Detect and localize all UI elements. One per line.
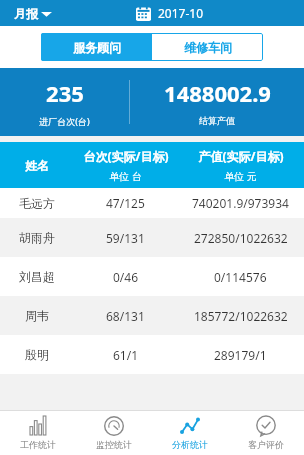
- staticText: 产值(实际/目标): [198, 148, 284, 164]
- staticText: 客户评价: [248, 439, 284, 450]
- staticText: 0/114576: [214, 269, 267, 285]
- staticText: 272850/1022632: [194, 230, 288, 246]
- button[interactable]: 毛远方: [0, 188, 304, 218]
- staticText: 姓名: [25, 158, 49, 173]
- staticText: 单位 台: [109, 169, 142, 183]
- staticText: 59/131: [106, 230, 145, 246]
- button[interactable]: 刘昌超: [0, 257, 304, 296]
- button[interactable]: 服务顾问: [41, 33, 152, 61]
- staticText: 胡雨舟: [19, 230, 55, 245]
- button[interactable]: 胡雨舟: [0, 218, 304, 257]
- staticText: 单位 元: [224, 169, 257, 183]
- other: Pick month: [136, 6, 151, 21]
- button[interactable]: 客户评价: [228, 411, 304, 455]
- staticText: 维修车间: [184, 40, 232, 55]
- staticText: 工作统计: [20, 439, 56, 450]
- staticText: 61/1: [113, 347, 139, 363]
- button[interactable]: 分析统计: [152, 411, 228, 455]
- staticText: 0/46: [113, 269, 139, 285]
- staticText: 服务顾问: [73, 40, 121, 55]
- staticText: 185772/1022632: [194, 308, 288, 324]
- staticText: 台次(实际/目标): [83, 148, 169, 164]
- staticText: 289179/1: [214, 347, 267, 363]
- staticText: 监控统计: [96, 439, 132, 450]
- staticText: 740201.9/973934: [192, 195, 289, 211]
- staticText: 68/131: [106, 308, 145, 324]
- staticText: 47/125: [106, 195, 145, 211]
- button[interactable]: 1488002.9: [130, 68, 304, 136]
- button[interactable]: 维修车间: [152, 33, 263, 61]
- staticText: 毛远方: [19, 196, 55, 211]
- button[interactable]: Pick month: [136, 5, 204, 21]
- button[interactable]: 殷明: [0, 335, 304, 374]
- staticText: 2017-10: [158, 5, 204, 21]
- button[interactable]: 工作统计: [0, 411, 76, 455]
- staticText: 结算产值: [199, 115, 235, 126]
- staticText: 殷明: [25, 347, 49, 362]
- staticText: 月报: [14, 6, 38, 21]
- staticText: 235: [46, 78, 84, 108]
- button[interactable]: 235: [0, 68, 129, 136]
- button[interactable]: 周韦: [0, 296, 304, 335]
- staticText: 周韦: [25, 308, 49, 323]
- staticText: 进厂台次(台): [39, 115, 90, 127]
- staticText: 刘昌超: [19, 269, 55, 284]
- staticText: 1488002.9: [164, 78, 271, 108]
- staticText: 分析统计: [172, 439, 208, 450]
- button[interactable]: 月报: [14, 6, 52, 21]
- button[interactable]: 监控统计: [76, 411, 152, 455]
